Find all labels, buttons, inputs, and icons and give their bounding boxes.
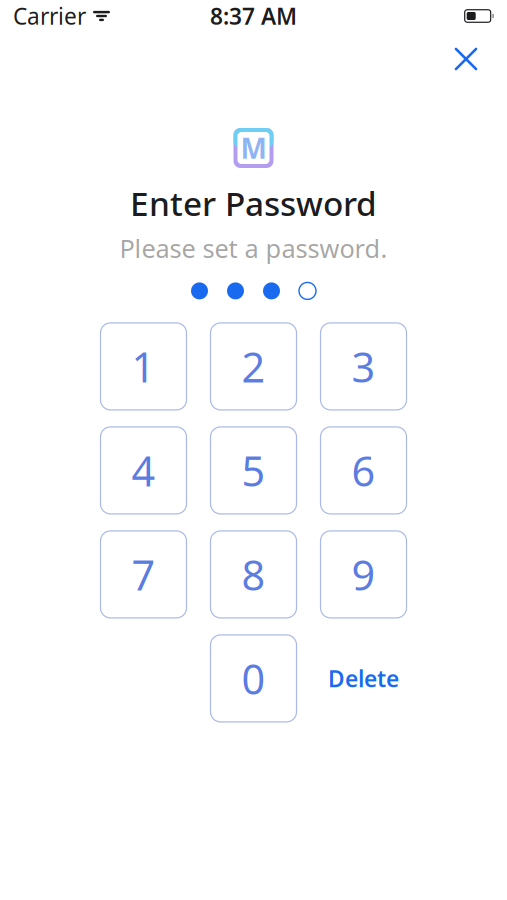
button[interactable]: Close <box>444 37 488 81</box>
staticText: 1 <box>131 339 155 394</box>
staticText: 7 <box>131 547 155 602</box>
staticText: 8:37 AM <box>210 1 297 31</box>
button[interactable]: 0 <box>210 635 296 722</box>
staticText: Please set a password. <box>119 231 387 265</box>
staticText: 0 <box>241 651 265 706</box>
button[interactable]: 6 <box>320 427 406 514</box>
button[interactable]: 9 <box>320 531 406 618</box>
button[interactable]: Delete <box>320 635 406 722</box>
staticText: 8 <box>241 547 265 602</box>
staticText: 9 <box>351 547 375 602</box>
staticText: Delete <box>328 663 399 693</box>
staticText: 2 <box>241 339 265 394</box>
staticText: 3 <box>351 339 375 394</box>
staticText: 5 <box>241 443 265 498</box>
button[interactable]: 4 <box>100 427 186 514</box>
staticText: Enter Password <box>130 181 377 225</box>
button[interactable]: 2 <box>210 323 296 410</box>
button[interactable]: 3 <box>320 323 406 410</box>
staticText: Carrier <box>13 1 86 31</box>
button[interactable]: 7 <box>100 531 186 618</box>
button[interactable]: 5 <box>210 427 296 514</box>
staticText: 4 <box>131 443 155 498</box>
staticText: M <box>240 129 266 167</box>
staticText: 6 <box>351 443 375 498</box>
button[interactable]: 8 <box>210 531 296 618</box>
button[interactable]: 1 <box>100 323 186 410</box>
